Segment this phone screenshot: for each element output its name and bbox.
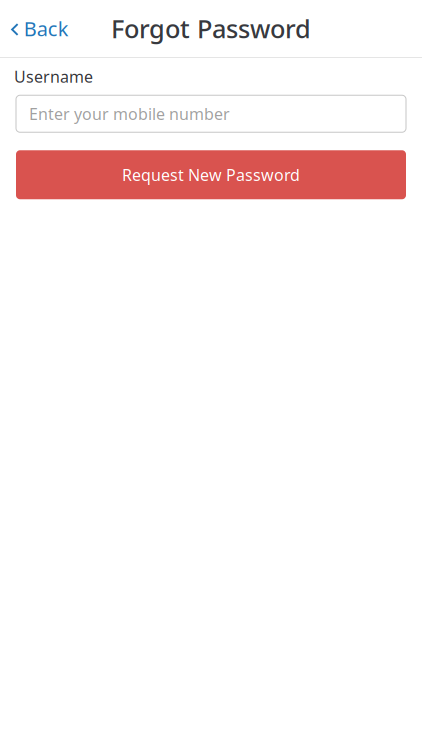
staticText: Enter your mobile number (29, 103, 230, 124)
button[interactable]: Request New Password (16, 150, 406, 199)
staticText: Back (24, 15, 69, 42)
staticText: Request New Password (122, 164, 300, 185)
button[interactable]: Back (0, 0, 79, 57)
staticText: Username (14, 66, 93, 87)
staticText: Forgot Password (111, 12, 311, 45)
button[interactable]: Enter your mobile number (16, 95, 406, 132)
